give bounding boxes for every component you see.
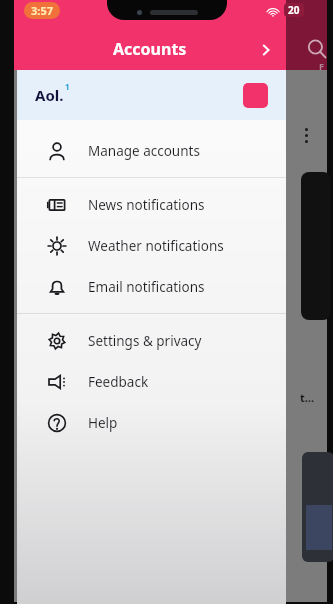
staticText: Weather notifications (88, 237, 224, 255)
button[interactable]: Email notifications (17, 266, 286, 307)
button[interactable]: Search (302, 34, 332, 64)
staticText: 3:57 (31, 3, 53, 18)
button[interactable]: Settings & privacy (17, 320, 286, 361)
button[interactable]: Collapse accounts (250, 34, 282, 66)
button[interactable]: Feedback (17, 361, 286, 402)
staticText: Feedback (88, 373, 149, 391)
staticText: Email notifications (88, 278, 205, 296)
button[interactable]: Manage accounts (17, 130, 286, 171)
staticText: Aol. (35, 85, 64, 105)
button[interactable]: Weather notifications (17, 225, 286, 266)
staticText: F (319, 60, 324, 72)
button[interactable]: Help (17, 402, 286, 443)
staticText: Settings & privacy (88, 332, 202, 350)
staticText: 20 (288, 3, 300, 17)
staticText: Manage accounts (88, 142, 200, 160)
staticText: News notifications (88, 196, 205, 214)
staticText: 1 (65, 81, 70, 92)
staticText: t… (300, 390, 315, 405)
button[interactable]: Aol. (17, 70, 286, 120)
staticText: Help (88, 414, 118, 432)
staticText: Accounts (113, 38, 187, 60)
button[interactable]: News notifications (17, 184, 286, 225)
